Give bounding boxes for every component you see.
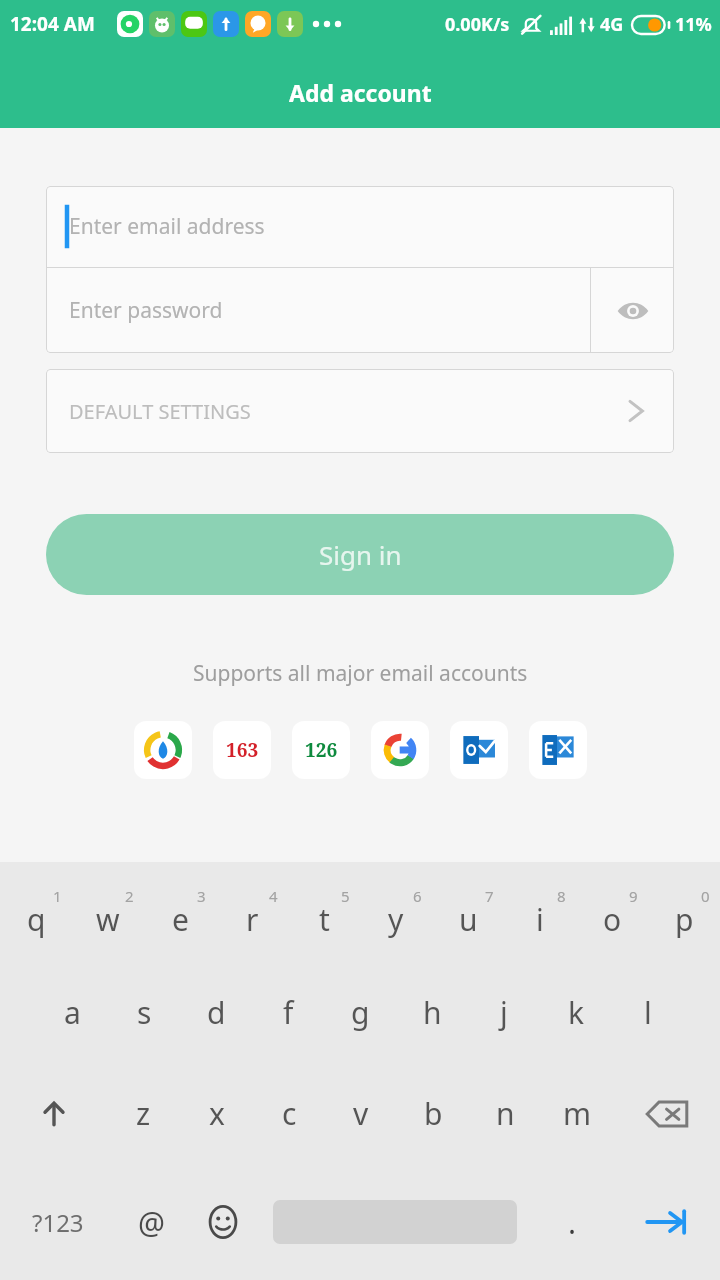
button[interactable]: c [253,1063,325,1164]
staticText: 2 [125,886,134,906]
button[interactable]: o [576,862,648,962]
staticText: z [136,1093,151,1134]
button[interactable]: t [288,862,360,962]
staticText: b [424,1093,443,1134]
button[interactable]: h [396,962,468,1063]
staticText: 126 [305,737,338,763]
staticText: 0.00K/s [445,12,510,37]
staticText: 0 [701,886,710,906]
staticText: 3 [197,886,206,906]
staticText: x [209,1093,225,1134]
button[interactable]: ?123 [0,1164,115,1280]
button[interactable]: e [144,862,216,962]
button[interactable]: q [0,862,72,962]
staticText: Supports all major email accounts [193,659,528,688]
button[interactable]: w [72,862,144,962]
button[interactable]: u [432,862,504,962]
button[interactable]: Email provider [450,721,508,779]
button[interactable]: k [540,962,612,1063]
staticText: 1 [53,886,62,906]
button[interactable]: p [648,862,720,962]
staticText: o [603,899,622,940]
button[interactable]: b [397,1063,469,1164]
staticText: 5 [341,886,350,906]
staticText: a [64,992,81,1033]
staticText: j [500,992,508,1033]
staticText: c [282,1093,297,1134]
button[interactable]: i [504,862,576,962]
button[interactable]: . [530,1164,614,1280]
button[interactable]: Email provider [529,721,587,779]
button[interactable]: l [612,962,684,1063]
staticText: 11% [675,12,712,37]
staticText: @ [138,1202,165,1243]
staticText: h [423,992,442,1033]
staticText: s [137,992,152,1033]
button[interactable]: Enter [614,1164,720,1280]
button[interactable]: @ [115,1164,187,1280]
staticText: p [675,899,694,940]
staticText: u [459,899,478,940]
staticText: e [172,899,189,940]
button[interactable]: a [36,962,108,1063]
staticText: n [496,1093,515,1134]
button[interactable]: y [360,862,432,962]
staticText: 12:04 AM [10,11,95,37]
staticText: Enter password [69,296,223,325]
button[interactable]: Email provider [371,721,429,779]
staticText: q [27,899,46,940]
staticText: r [246,899,259,940]
staticText: . [568,1202,577,1243]
staticText: DEFAULT SETTINGS [69,398,251,425]
staticText: 9 [629,886,638,906]
staticText: m [563,1093,592,1134]
staticText: k [568,992,585,1033]
button[interactable]: d [180,962,252,1063]
button[interactable]: j [468,962,540,1063]
button[interactable]: g [324,962,396,1063]
staticText: l [644,992,652,1033]
button[interactable]: Backspace [613,1063,720,1164]
staticText: w [96,899,120,940]
button[interactable]: Email provider [213,721,271,779]
staticText: Sign in [319,537,402,572]
staticText: f [283,992,294,1033]
button[interactable]: z [107,1063,180,1164]
button[interactable]: n [469,1063,541,1164]
button[interactable]: Sign in [46,514,674,595]
button[interactable]: v [325,1063,397,1164]
button[interactable]: Shift [0,1063,107,1164]
button[interactable]: f [252,962,324,1063]
staticText: Enter email address [69,212,265,241]
button[interactable]: Show password [591,268,674,353]
button[interactable]: s [108,962,180,1063]
button[interactable]: x [180,1063,253,1164]
staticText: 7 [485,886,494,906]
staticText: t [319,899,330,940]
button[interactable]: Enter email address [46,186,674,267]
staticText: v [353,1093,369,1134]
staticText: ?123 [32,1206,84,1239]
staticText: 163 [226,737,259,763]
button[interactable]: r [216,862,288,962]
button[interactable]: Email provider [134,721,192,779]
staticText: g [351,992,370,1033]
button[interactable]: Emoji [187,1164,259,1280]
staticText: y [388,899,404,940]
staticText: 4G [600,12,624,37]
staticText: Add account [289,77,432,108]
staticText: 6 [413,886,422,906]
staticText: 4 [269,886,278,906]
button[interactable]: Enter password [46,268,590,353]
button[interactable]: m [541,1063,613,1164]
button[interactable]: Email provider [292,721,350,779]
staticText: 8 [557,886,566,906]
staticText: d [207,992,226,1033]
staticText: i [536,899,544,940]
button[interactable]: DEFAULT SETTINGS [46,369,674,453]
